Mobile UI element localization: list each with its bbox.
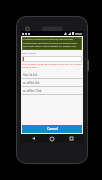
staticText: http://a.link xyxy=(23,73,38,77)
button[interactable] xyxy=(22,56,82,62)
staticText: Order Number xyxy=(22,52,37,55)
staticText: an offline 2 link xyxy=(23,89,42,93)
button[interactable]: http://a.link xyxy=(22,71,82,79)
button[interactable]: an offline 2 link xyxy=(22,87,82,95)
button[interactable]: an offline link xyxy=(22,79,82,87)
button[interactable]: Back xyxy=(26,134,40,143)
staticText: To request a refund of your purchase, en… xyxy=(23,38,81,47)
button[interactable]: Recent apps xyxy=(64,134,78,143)
button[interactable]: Cancel xyxy=(22,125,82,133)
staticText: an offline link xyxy=(23,81,40,85)
button[interactable]: Home xyxy=(45,134,59,143)
staticText: Error: an order number was entered that … xyxy=(22,63,82,69)
staticText: Cancel xyxy=(47,127,58,131)
